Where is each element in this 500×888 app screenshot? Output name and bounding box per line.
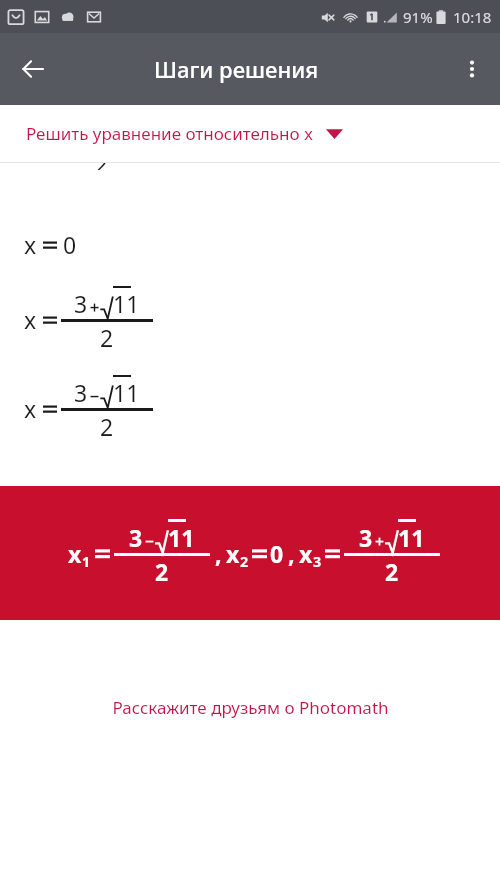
staticText: 11	[398, 522, 425, 553]
staticText: Шаги решения	[154, 54, 319, 84]
button[interactable]: Расскажите друзьям о Photomath	[0, 682, 500, 732]
staticText: 10:18	[453, 7, 492, 27]
staticText: 11	[168, 522, 195, 553]
staticText: 0	[270, 538, 284, 569]
button[interactable]: Решить уравнение относительно x	[0, 105, 500, 162]
staticText: 0	[63, 229, 77, 260]
staticText: 3	[129, 522, 143, 553]
staticText: x	[24, 393, 37, 424]
staticText: 2	[100, 322, 114, 353]
staticText: 2	[95, 163, 109, 170]
staticText: ,	[288, 538, 295, 569]
staticText: 3	[74, 377, 88, 408]
button[interactable]: x	[0, 486, 500, 620]
staticText: 11	[113, 288, 140, 319]
staticText: x	[24, 229, 37, 260]
staticText: 3	[74, 288, 88, 319]
staticText: x	[68, 538, 82, 569]
staticText: x	[299, 538, 313, 569]
staticText: ,	[215, 538, 222, 569]
staticText: 3	[313, 552, 322, 571]
staticText: 2	[385, 556, 399, 587]
staticText: x	[24, 304, 37, 335]
staticText: 2	[100, 411, 114, 442]
staticText: x	[226, 538, 240, 569]
staticText: 11	[113, 377, 140, 408]
staticText: 3	[359, 522, 373, 553]
staticText: Решить уравнение относительно x	[26, 122, 314, 145]
button[interactable]: More options	[450, 47, 494, 91]
staticText: 91%	[403, 7, 433, 27]
staticText: 2	[240, 552, 249, 571]
staticText: 2	[155, 556, 169, 587]
staticText: 1	[82, 552, 91, 571]
button[interactable]: Back	[10, 46, 56, 92]
staticText: Расскажите друзьям о Photomath	[112, 696, 389, 719]
